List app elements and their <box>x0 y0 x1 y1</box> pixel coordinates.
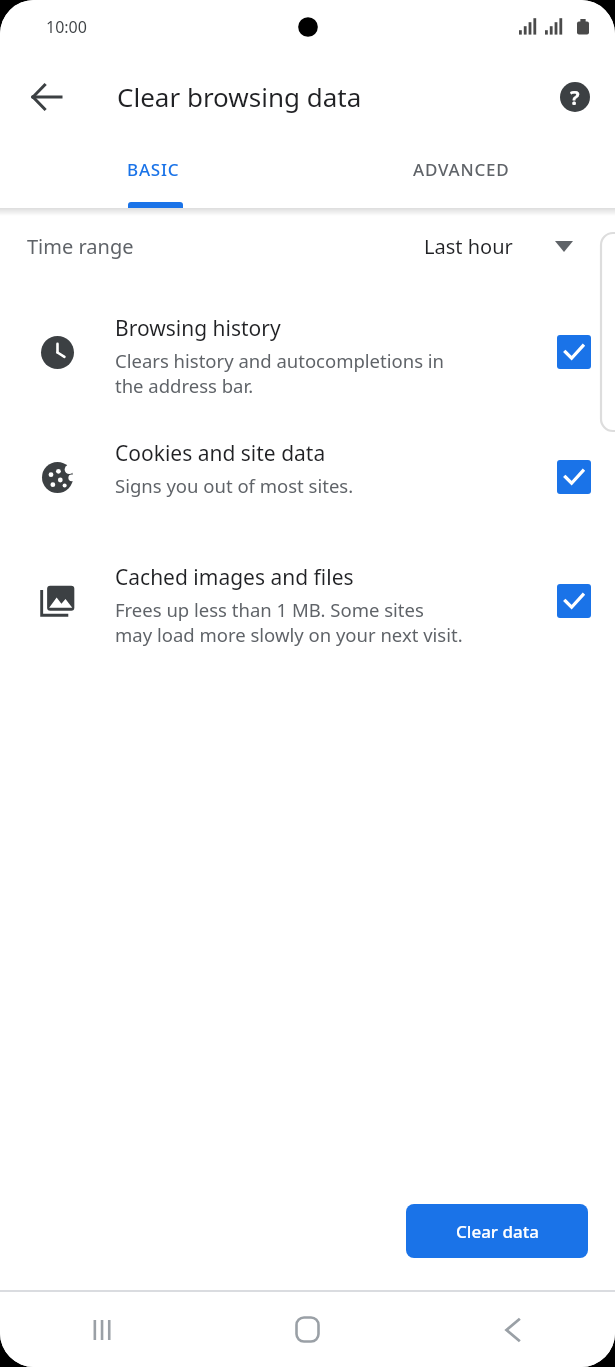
staticText: 10:00 <box>46 16 87 38</box>
button[interactable]: Help <box>549 71 601 123</box>
button[interactable]: Checked <box>557 460 591 494</box>
staticText: Cookies and site data <box>115 439 326 468</box>
staticText: Browsing history <box>115 314 281 343</box>
staticText: ? <box>570 84 580 111</box>
button[interactable]: Back <box>19 69 75 125</box>
button[interactable]: BASIC <box>0 140 307 208</box>
button[interactable]: Cookies and site data <box>0 431 615 523</box>
button[interactable]: Checked <box>557 584 591 618</box>
button[interactable]: Checked <box>557 335 591 369</box>
button[interactable]: Home <box>205 1292 410 1367</box>
staticText: Time range <box>27 233 134 260</box>
staticText: ADVANCED <box>413 158 510 181</box>
button[interactable]: Cached images and files <box>0 555 615 648</box>
staticText: Clear browsing data <box>117 79 362 114</box>
button[interactable]: Recent apps <box>0 1292 205 1367</box>
staticText: Clears history and autocompletions in th… <box>115 348 445 399</box>
staticText: BASIC <box>127 158 180 181</box>
staticText: Signs you out of most sites. <box>115 473 354 498</box>
staticText: Frees up less than 1 MB. Some sites may … <box>115 597 463 648</box>
button[interactable]: ADVANCED <box>307 140 615 208</box>
button[interactable]: Time range <box>0 216 615 276</box>
button[interactable]: Back <box>410 1292 615 1367</box>
button[interactable]: Browsing history <box>0 306 615 399</box>
button[interactable]: Clear data <box>406 1204 588 1258</box>
staticText: Cached images and files <box>115 563 354 592</box>
staticText: Clear data <box>456 1220 539 1243</box>
staticText: Last hour <box>424 233 513 260</box>
